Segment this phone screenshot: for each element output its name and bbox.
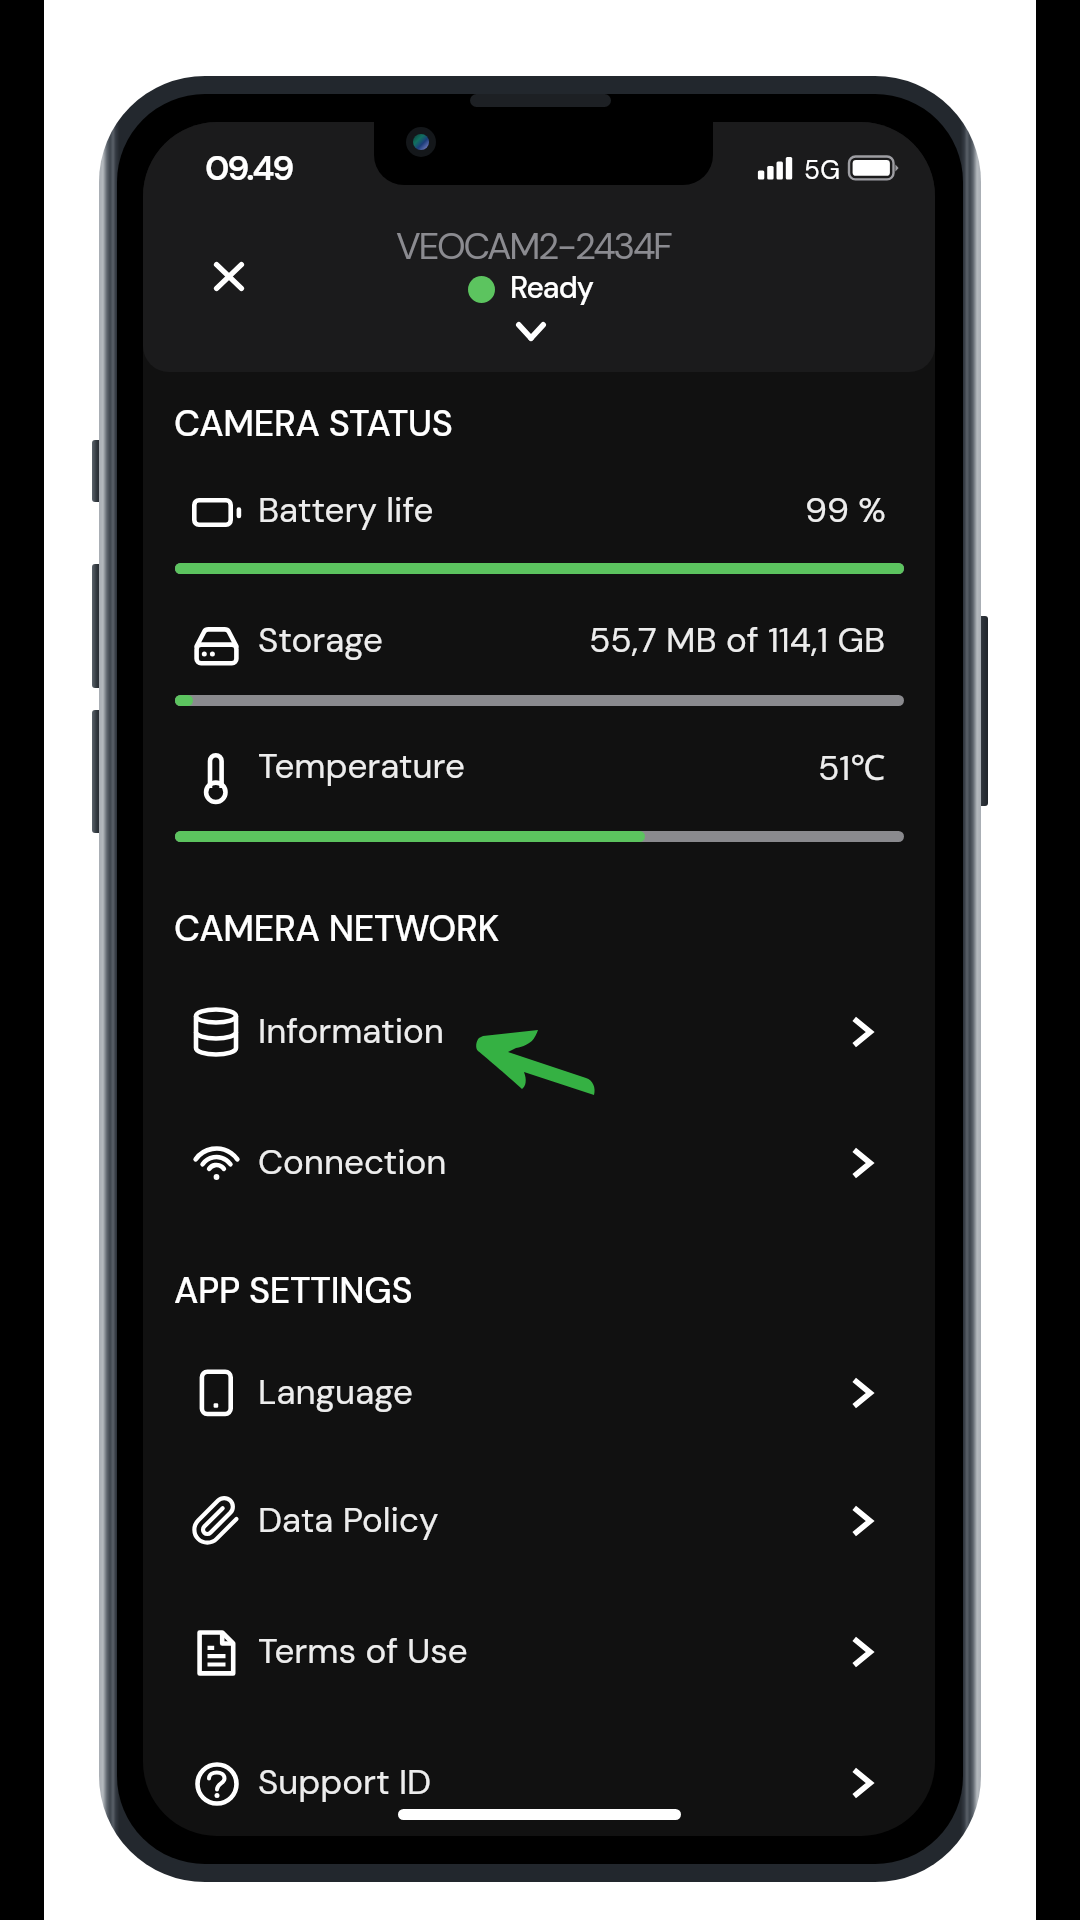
staticText: 51℃ — [818, 743, 886, 791]
button[interactable] — [143, 967, 935, 1097]
staticText: Data Policy — [258, 1497, 439, 1543]
button[interactable] — [143, 726, 935, 838]
staticText: Temperature — [258, 743, 465, 789]
button[interactable] — [143, 462, 935, 574]
button[interactable] — [143, 1587, 935, 1717]
button[interactable] — [143, 1718, 935, 1836]
button[interactable] — [143, 1456, 935, 1586]
staticText: 5G — [804, 153, 841, 187]
staticText: Battery life — [258, 487, 434, 533]
staticText: CAMERA STATUS — [174, 400, 453, 447]
staticText: Language — [258, 1369, 413, 1415]
staticText: Storage — [258, 617, 383, 663]
staticText: 99 % — [805, 487, 886, 533]
staticText: APP SETTINGS — [174, 1267, 413, 1314]
staticText: Terms of Use — [258, 1628, 468, 1674]
button[interactable] — [143, 1098, 935, 1228]
staticText: 55,7 MB of 114,1 GB — [589, 617, 886, 663]
staticText: Information — [258, 1008, 444, 1054]
button[interactable] — [143, 1328, 935, 1458]
staticText: VEOCAM2-2434F — [396, 222, 671, 270]
staticText: Connection — [258, 1139, 447, 1185]
staticText: 09.49 — [205, 145, 293, 191]
button[interactable]: Expand device details — [498, 304, 564, 358]
staticText: Support ID — [258, 1759, 432, 1805]
staticText: Ready — [510, 268, 594, 307]
button[interactable] — [143, 599, 935, 711]
staticText: CAMERA NETWORK — [174, 905, 500, 952]
button[interactable]: Close — [194, 242, 263, 311]
